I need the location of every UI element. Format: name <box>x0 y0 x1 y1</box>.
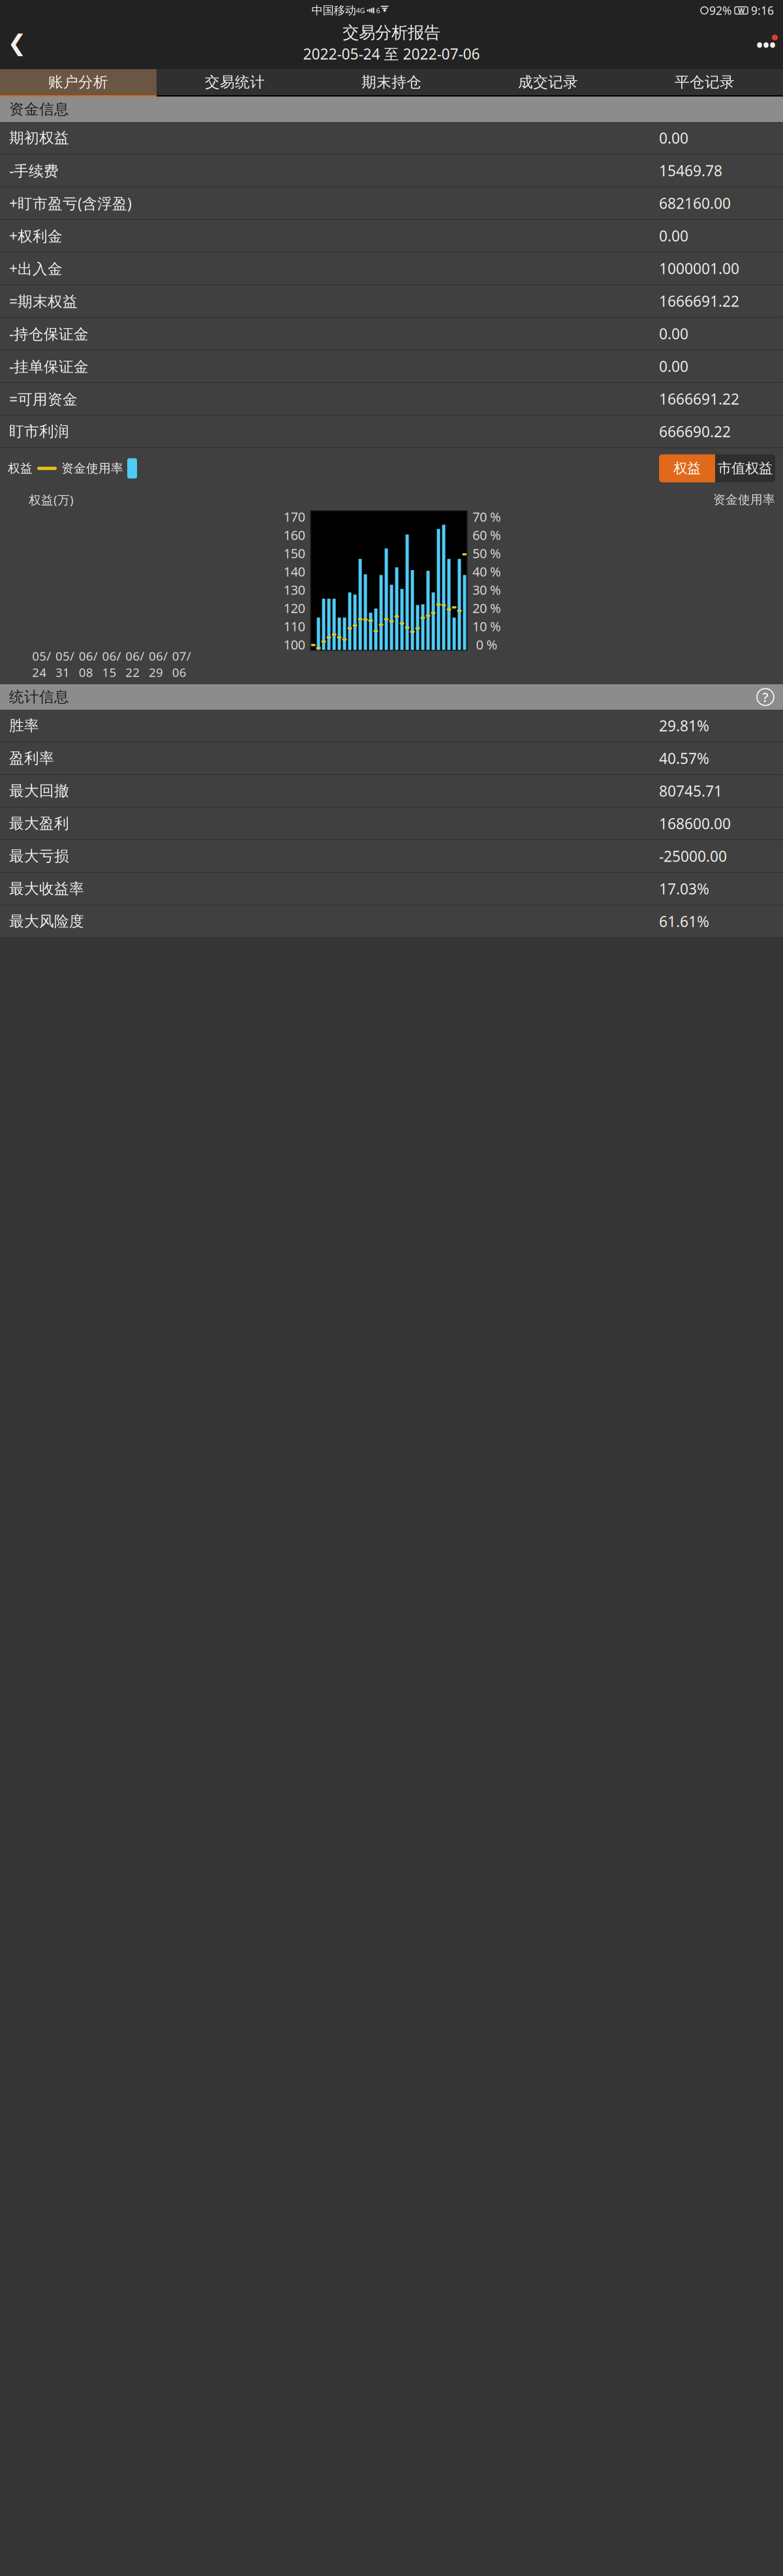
staticText: 06/22 <box>125 648 144 680</box>
staticText: 9:16 <box>751 3 774 18</box>
staticText: -25000.00 <box>659 846 727 866</box>
staticText: 07/06 <box>172 648 191 680</box>
staticText: 0.00 <box>659 226 688 246</box>
staticText: 权益 <box>8 461 33 476</box>
staticText: 60 % <box>472 526 501 544</box>
button[interactable]: 交易统计 <box>157 69 313 97</box>
staticText: 40.57% <box>659 748 709 768</box>
staticText: 盈利率 <box>9 749 54 767</box>
staticText: +盯市盈亏(含浮盈) <box>9 193 132 213</box>
staticText: 150 <box>284 544 305 562</box>
staticText: 61.61% <box>659 912 709 931</box>
staticText: 1666691.22 <box>659 389 739 409</box>
staticText: -持仓保证金 <box>9 324 89 343</box>
staticText: W <box>738 6 745 15</box>
staticText: 0.00 <box>659 356 688 376</box>
staticText: 40 % <box>472 563 501 580</box>
staticText: ? <box>762 688 768 706</box>
staticText: =可用资金 <box>9 389 78 409</box>
button[interactable]: 平仓记录 <box>626 69 783 97</box>
staticText: 0 % <box>476 636 498 653</box>
button[interactable]: 期末持仓 <box>313 69 470 97</box>
staticText: 资金使用率 <box>713 492 775 507</box>
staticText: 17.03% <box>659 879 709 899</box>
staticText: 0.00 <box>659 128 688 148</box>
staticText: 30 % <box>472 581 501 598</box>
staticText: 市值权益 <box>718 460 773 477</box>
staticText: 账户分析 <box>48 73 108 91</box>
staticText: 盯市利润 <box>9 422 69 441</box>
staticText: +出入金 <box>9 259 63 278</box>
staticText: 期末持仓 <box>361 73 422 91</box>
staticText: 50 % <box>472 544 501 562</box>
button[interactable]: 成交记录 <box>470 69 626 97</box>
button[interactable]: 权益 <box>659 454 715 482</box>
staticText: 06/29 <box>149 648 168 680</box>
button[interactable]: 更多 <box>749 23 783 63</box>
staticText: 168600.00 <box>659 814 731 833</box>
staticText: 胜率 <box>9 717 39 735</box>
staticText: 最大风险度 <box>9 912 84 930</box>
staticText: 29.81% <box>659 716 709 735</box>
staticText: 120 <box>284 599 305 617</box>
staticText: +权利金 <box>9 226 63 246</box>
staticText: 100 <box>284 636 305 653</box>
staticText: 期初权益 <box>9 129 69 147</box>
staticText: 权益 <box>673 460 701 477</box>
staticText: 05/31 <box>56 648 74 680</box>
staticText: 10 % <box>472 618 501 635</box>
button[interactable]: 市值权益 <box>715 454 775 482</box>
staticText: -挂单保证金 <box>9 356 89 376</box>
staticText: 05/24 <box>32 648 51 680</box>
staticText: 2022-05-24 至 2022-07-06 <box>303 44 480 64</box>
staticText: ••• <box>756 33 776 57</box>
staticText: 中国移动 <box>312 4 356 17</box>
staticText: 15469.78 <box>659 161 722 180</box>
staticText: 资金使用率 <box>61 461 123 476</box>
staticText: 权益(万) <box>29 492 74 508</box>
staticText: 70 % <box>472 508 501 525</box>
staticText: 平仓记录 <box>675 73 735 91</box>
button[interactable]: 帮助 <box>757 689 774 705</box>
staticText: 666690.22 <box>659 422 731 441</box>
staticText: =期末权益 <box>9 291 78 311</box>
staticText: 最大收益率 <box>9 880 84 898</box>
staticText: -手续费 <box>9 161 59 180</box>
staticText: 1666691.22 <box>659 291 739 311</box>
staticText: 06/15 <box>102 648 121 680</box>
staticText: 最大回撤 <box>9 782 69 800</box>
staticText: 110 <box>284 618 305 635</box>
staticText: 92% <box>709 3 731 18</box>
staticText: 170 <box>284 508 305 525</box>
staticText: 统计信息 <box>9 688 69 706</box>
staticText: 0.00 <box>659 324 688 343</box>
staticText: 4G <box>356 6 365 15</box>
staticText: 资金信息 <box>9 100 69 118</box>
staticText: 140 <box>284 563 305 580</box>
staticText: ❮ <box>8 30 26 56</box>
button[interactable]: 账户分析 <box>0 69 157 97</box>
button[interactable]: 返回 <box>0 23 34 63</box>
staticText: 682160.00 <box>659 193 731 213</box>
staticText: 1000001.00 <box>659 259 739 278</box>
staticText: 最大盈利 <box>9 814 69 833</box>
staticText: 20 % <box>472 599 501 617</box>
staticText: 80745.71 <box>659 781 722 801</box>
staticText: 06/08 <box>79 648 98 680</box>
staticText: 最大亏损 <box>9 847 69 865</box>
staticText: 130 <box>284 581 305 598</box>
staticText: 成交记录 <box>518 73 578 91</box>
staticText: 6 <box>376 6 380 15</box>
staticText: 160 <box>284 526 305 544</box>
staticText: 交易统计 <box>205 73 265 91</box>
staticText: 交易分析报告 <box>343 22 440 43</box>
